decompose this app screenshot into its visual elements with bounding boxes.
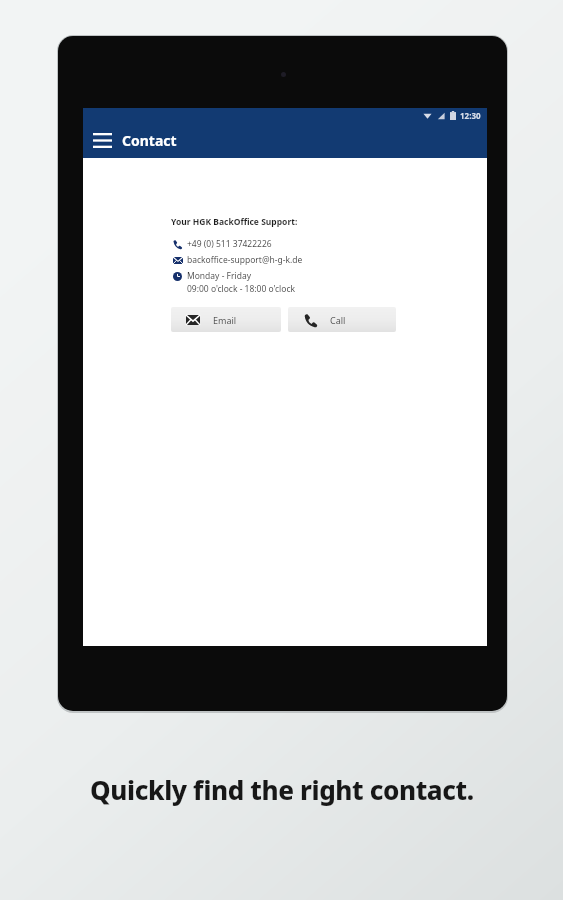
staticText: Quickly find the right contact.	[90, 772, 474, 807]
button[interactable]: Call	[288, 307, 396, 332]
staticText: Contact	[122, 131, 177, 150]
staticText: backoffice-support@h-g-k.de	[187, 254, 303, 266]
staticText: 12:30	[460, 110, 481, 121]
staticText: Call	[330, 314, 346, 326]
staticText: 09:00 o'clock - 18:00 o'clock	[187, 283, 296, 295]
button[interactable]: Email	[171, 307, 281, 332]
staticText: +49 (0) 511 37422226	[187, 238, 272, 250]
staticText: Monday - Friday	[187, 270, 252, 282]
button[interactable]: Open navigation menu	[91, 130, 114, 151]
staticText: Your HGK BackOffice Support:	[171, 216, 298, 228]
staticText: Email	[213, 314, 237, 326]
